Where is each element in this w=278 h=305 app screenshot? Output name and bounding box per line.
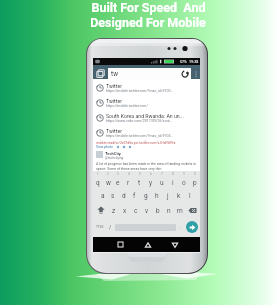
staticText: k bbox=[177, 192, 181, 200]
staticText: TechCity bbox=[105, 151, 121, 156]
staticText: 19:38 bbox=[189, 60, 199, 64]
staticText: n bbox=[167, 207, 171, 215]
staticText: h bbox=[155, 192, 159, 200]
button[interactable]: l bbox=[184, 189, 195, 202]
button[interactable]: Shift bbox=[93, 203, 108, 217]
button[interactable]: Recents bbox=[107, 237, 134, 252]
staticText: e bbox=[116, 179, 120, 187]
staticText: https://mobile.twitter.com/ bbox=[106, 104, 148, 108]
staticText: / bbox=[109, 224, 112, 230]
staticText: 8 bbox=[172, 172, 174, 176]
staticText: 5 bbox=[139, 172, 141, 176]
staticText: j bbox=[167, 192, 169, 200]
button[interactable]: r bbox=[123, 176, 134, 189]
button[interactable]: k bbox=[173, 189, 184, 202]
staticText: x bbox=[123, 207, 127, 215]
button[interactable]: More options bbox=[191, 68, 200, 79]
button[interactable]: p bbox=[189, 176, 200, 189]
staticText: t bbox=[138, 179, 141, 187]
button[interactable]: i bbox=[167, 176, 178, 189]
staticText: Twitter bbox=[106, 128, 123, 134]
staticText: tw bbox=[111, 70, 119, 78]
button[interactable]: j bbox=[162, 189, 173, 202]
staticText: b bbox=[156, 207, 160, 215]
staticText: 6 bbox=[150, 172, 152, 176]
staticText: o bbox=[182, 179, 186, 187]
button[interactable]: x bbox=[119, 204, 130, 217]
staticText: z bbox=[112, 207, 116, 215]
button[interactable]: a bbox=[98, 189, 108, 202]
staticText: ?123 bbox=[96, 225, 104, 229]
staticText: 1 bbox=[97, 172, 99, 176]
button[interactable]: Twitter bbox=[93, 95, 200, 110]
staticText: q bbox=[96, 179, 100, 187]
button[interactable]: Twitter bbox=[93, 125, 200, 140]
button[interactable]: y bbox=[145, 176, 156, 189]
staticText: c bbox=[134, 207, 138, 215]
staticText: l bbox=[189, 192, 191, 200]
staticText: u bbox=[160, 179, 164, 187]
button[interactable]: b bbox=[152, 204, 163, 217]
staticText: https://mobile.twitter.com/?max_id=9100.… bbox=[106, 89, 174, 93]
button[interactable]: / bbox=[106, 217, 115, 237]
button[interactable]: h bbox=[151, 189, 162, 202]
staticText: https://www.cnbc.com/2017/09/26/sout... bbox=[106, 119, 173, 123]
button[interactable]: c bbox=[130, 204, 141, 217]
button[interactable]: u bbox=[156, 176, 167, 189]
button[interactable]: v bbox=[141, 204, 152, 217]
staticText: Twitter bbox=[106, 83, 123, 89]
staticText: s bbox=[111, 192, 115, 200]
button[interactable]: ?123 bbox=[93, 217, 106, 237]
button[interactable]: Twitter bbox=[93, 80, 200, 95]
staticText: . bbox=[179, 224, 181, 230]
staticText: 7 bbox=[161, 172, 163, 176]
button[interactable]: s bbox=[108, 189, 118, 202]
staticText: p bbox=[193, 179, 197, 187]
staticText: f bbox=[133, 192, 136, 200]
button[interactable]: e bbox=[113, 176, 123, 189]
staticText: w bbox=[106, 179, 111, 187]
staticText: m bbox=[177, 207, 183, 215]
button[interactable]: Home bbox=[134, 237, 161, 252]
button[interactable]: z bbox=[108, 204, 119, 217]
button[interactable]: t bbox=[134, 176, 145, 189]
staticText: 4 bbox=[128, 172, 130, 176]
staticText: Built For Speed And bbox=[91, 0, 206, 15]
staticText: 9 bbox=[183, 172, 185, 176]
button[interactable]: m bbox=[174, 204, 185, 217]
staticText: South Korea and Rwanda: An un... bbox=[106, 113, 184, 119]
staticText: y bbox=[149, 179, 153, 187]
button[interactable]: Backspace bbox=[185, 203, 200, 217]
staticText: https://mobile.twitter.com/?max_id=9103.… bbox=[106, 134, 174, 138]
button[interactable]: Go bbox=[184, 217, 200, 237]
staticText: https://mobile.twitter.com/?max_id=9103.… bbox=[96, 137, 162, 141]
staticText: A lot of progress has been made in the a… bbox=[96, 162, 198, 171]
staticText: v bbox=[145, 207, 149, 215]
staticText: @techcitying bbox=[105, 156, 124, 160]
staticText: 2 bbox=[107, 172, 109, 176]
button[interactable]: g bbox=[140, 189, 151, 202]
staticText: 57% bbox=[180, 60, 187, 64]
button[interactable]: d bbox=[118, 189, 129, 202]
staticText: Twitter bbox=[106, 98, 123, 104]
staticText: r bbox=[127, 179, 130, 187]
staticText: d bbox=[122, 192, 126, 200]
staticText: View photo bbox=[96, 145, 113, 149]
button[interactable]: n bbox=[163, 204, 174, 217]
button[interactable]: Tabs bbox=[93, 68, 108, 79]
button[interactable]: Back bbox=[161, 237, 188, 252]
button[interactable]: o bbox=[178, 176, 189, 189]
staticText: i bbox=[172, 179, 174, 187]
button[interactable]: tw bbox=[108, 68, 191, 79]
button[interactable]: f bbox=[129, 189, 140, 202]
staticText: Designed For Mobile bbox=[90, 15, 206, 30]
button[interactable]: q bbox=[93, 176, 103, 189]
button[interactable]: w bbox=[103, 176, 113, 189]
button[interactable]: South Korea and Rwanda: An un... bbox=[93, 110, 200, 125]
staticText: g bbox=[144, 192, 148, 200]
staticText: 3 bbox=[117, 172, 119, 176]
staticText: 0 bbox=[194, 172, 196, 176]
staticText: a bbox=[101, 192, 105, 200]
